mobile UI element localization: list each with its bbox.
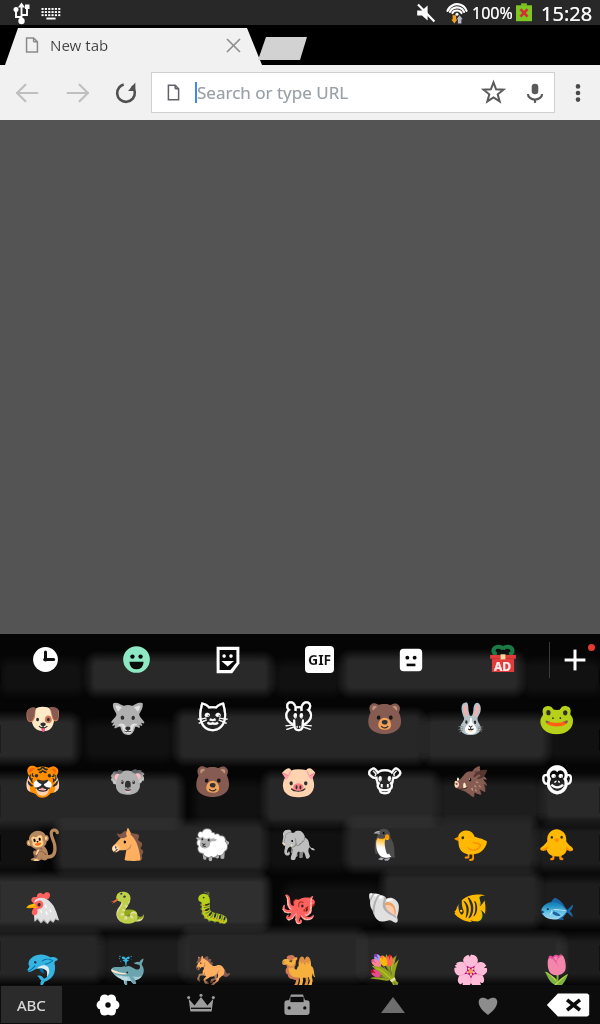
button[interactable]: 🐱: [170, 687, 256, 750]
button[interactable]: 🐗: [428, 750, 514, 813]
button[interactable]: 🐬: [0, 939, 85, 1002]
button[interactable]: Search or type URL: [152, 73, 554, 112]
staticText: 🐵: [540, 764, 575, 799]
staticText: 🐫: [280, 953, 318, 988]
staticText: 🐗: [452, 764, 490, 799]
button[interactable]: 🐵: [514, 750, 600, 813]
button[interactable]: 🐳: [85, 939, 170, 1002]
staticText: 🐴: [109, 827, 147, 862]
staticText: 🐺: [109, 701, 147, 736]
button[interactable]: 🐰: [428, 687, 514, 750]
staticText: 🐰: [452, 701, 490, 736]
button[interactable]: Emoji: [91, 634, 182, 685]
button[interactable]: 🐨: [85, 750, 170, 813]
button[interactable]: Bookmark: [471, 73, 515, 112]
button[interactable]: Reload: [102, 65, 149, 120]
button[interactable]: Car mode: [249, 985, 345, 1024]
button[interactable]: 🐸: [514, 687, 600, 750]
staticText: 🐶: [24, 701, 62, 736]
button[interactable]: 🐚: [342, 876, 428, 939]
button[interactable]: Settings: [63, 985, 153, 1024]
button[interactable]: Favorites: [441, 985, 535, 1024]
button[interactable]: 🐫: [256, 939, 342, 1002]
staticText: 🐟: [538, 890, 576, 925]
button[interactable]: 🐍: [85, 876, 170, 939]
button[interactable]: 🐤: [428, 813, 514, 876]
staticText: 🐻: [366, 701, 404, 736]
staticText: 🐎: [194, 953, 232, 988]
button[interactable]: 🐷: [256, 750, 342, 813]
button[interactable]: 🐥: [514, 813, 600, 876]
button[interactable]: 🐒: [0, 813, 85, 876]
staticText: ABC: [17, 995, 46, 1015]
button[interactable]: 🌷: [514, 939, 600, 1002]
staticText: 🐳: [109, 953, 147, 988]
button[interactable]: 🐎: [170, 939, 256, 1002]
button[interactable]: Forward: [54, 65, 102, 120]
button[interactable]: 🐧: [342, 813, 428, 876]
staticText: 15:28: [541, 0, 593, 25]
button[interactable]: New tab: [10, 25, 250, 65]
staticText: 🐙: [280, 890, 318, 925]
button[interactable]: New tab: [258, 25, 308, 65]
staticText: GIF: [308, 650, 332, 669]
button[interactable]: Ad: [457, 634, 549, 685]
staticText: AD: [494, 658, 512, 674]
button[interactable]: 🐻: [170, 750, 256, 813]
staticText: 100%: [472, 2, 513, 24]
button[interactable]: GIF: [273, 634, 365, 685]
button[interactable]: Delete: [535, 985, 600, 1024]
button[interactable]: 🐮: [342, 750, 428, 813]
button[interactable]: 🐘: [256, 813, 342, 876]
staticText: 💐: [366, 953, 404, 988]
staticText: 🐬: [24, 953, 62, 988]
staticText: 🐧: [366, 827, 404, 862]
staticText: 🐑: [194, 827, 232, 862]
button[interactable]: Recent: [0, 634, 91, 685]
staticText: 🐸: [538, 701, 576, 736]
button[interactable]: 🌸: [428, 939, 514, 1002]
staticText: 🐨: [109, 764, 147, 799]
button[interactable]: Emoticons: [365, 634, 457, 685]
staticText: 🐍: [109, 890, 147, 925]
button[interactable]: 🐺: [85, 687, 170, 750]
button[interactable]: 🐻: [342, 687, 428, 750]
button[interactable]: More options: [555, 65, 600, 120]
button[interactable]: 🐭: [256, 687, 342, 750]
button[interactable]: 🐑: [170, 813, 256, 876]
staticText: 🌷: [538, 953, 576, 988]
staticText: Search or type URL: [197, 81, 349, 104]
staticText: 🐘: [280, 827, 318, 862]
button[interactable]: Voice search: [515, 73, 554, 112]
staticText: 🐒: [24, 827, 62, 862]
button[interactable]: 🐔: [0, 876, 85, 939]
staticText: 🐠: [452, 890, 490, 925]
button[interactable]: Shift: [345, 985, 441, 1024]
button[interactable]: 💐: [342, 939, 428, 1002]
button[interactable]: Close tab: [213, 25, 253, 65]
button[interactable]: Add keyboard: [550, 634, 600, 685]
staticText: 🌸: [452, 953, 490, 988]
staticText: 🐛: [194, 890, 232, 925]
button[interactable]: 🐴: [85, 813, 170, 876]
staticText: 🐻: [194, 764, 232, 799]
staticText: 🐥: [538, 827, 576, 862]
staticText: 🐤: [452, 827, 490, 862]
button[interactable]: 🐙: [256, 876, 342, 939]
staticText: 🐔: [24, 890, 62, 925]
staticText: New tab: [50, 35, 109, 55]
staticText: 🐱: [197, 701, 229, 736]
button[interactable]: 🐠: [428, 876, 514, 939]
button[interactable]: Stickers: [182, 634, 273, 685]
button[interactable]: 🐟: [514, 876, 600, 939]
button[interactable]: Themes: [153, 985, 249, 1024]
staticText: 🐚: [366, 890, 404, 925]
staticText: 🐯: [24, 764, 62, 799]
staticText: 🐮: [367, 764, 403, 799]
button[interactable]: 🐶: [0, 687, 85, 750]
button[interactable]: Back: [0, 65, 54, 120]
button[interactable]: 🐛: [170, 876, 256, 939]
button[interactable]: ABC: [1, 986, 62, 1023]
staticText: 🐭: [283, 701, 315, 736]
button[interactable]: 🐯: [0, 750, 85, 813]
